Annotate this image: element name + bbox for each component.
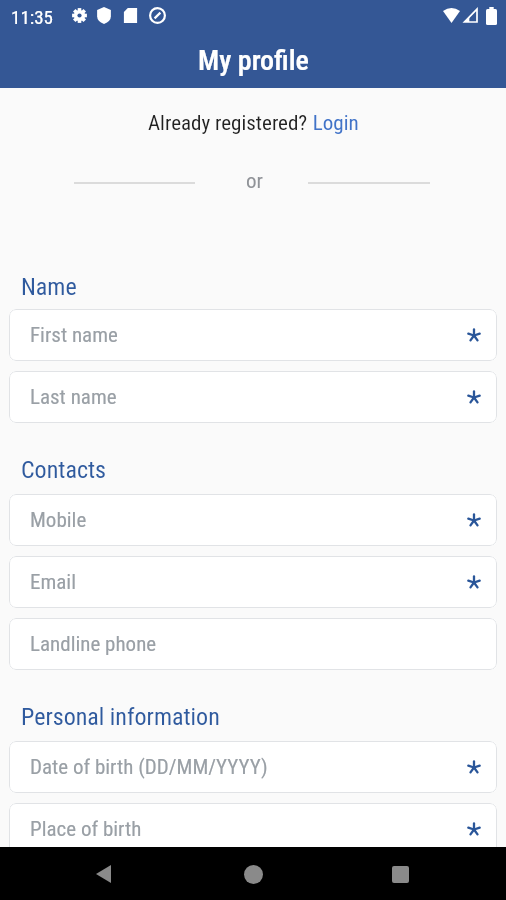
button[interactable]: Place of birth: [9, 803, 497, 855]
staticText: Personal information: [21, 703, 220, 731]
staticText: Place of birth: [30, 817, 451, 842]
staticText: Date of birth (DD/MM/YYYY): [30, 755, 451, 780]
staticText: Already registered?: [148, 111, 308, 136]
staticText: Name: [21, 273, 77, 301]
staticText: Mobile: [30, 508, 451, 533]
button[interactable]: Last name: [9, 371, 497, 423]
staticText: First name: [30, 323, 451, 348]
button[interactable]: Mobile: [9, 494, 497, 546]
staticText: My profile: [198, 44, 309, 77]
staticText: Last name: [30, 385, 451, 410]
staticText: Contacts: [21, 456, 107, 484]
button[interactable]: [237, 858, 269, 890]
button[interactable]: [87, 858, 119, 890]
button[interactable]: Landline phone: [9, 618, 497, 670]
button[interactable]: Email: [9, 556, 497, 608]
staticText: 11:35: [11, 6, 53, 28]
button[interactable]: Date of birth (DD/MM/YYYY): [9, 741, 497, 793]
staticText: Email: [30, 570, 451, 595]
staticText: or: [246, 169, 263, 194]
button[interactable]: Login: [308, 111, 359, 136]
staticText: Login: [308, 111, 359, 136]
staticText: Landline phone: [30, 632, 497, 657]
button[interactable]: First name: [9, 309, 497, 361]
button[interactable]: [384, 858, 416, 890]
